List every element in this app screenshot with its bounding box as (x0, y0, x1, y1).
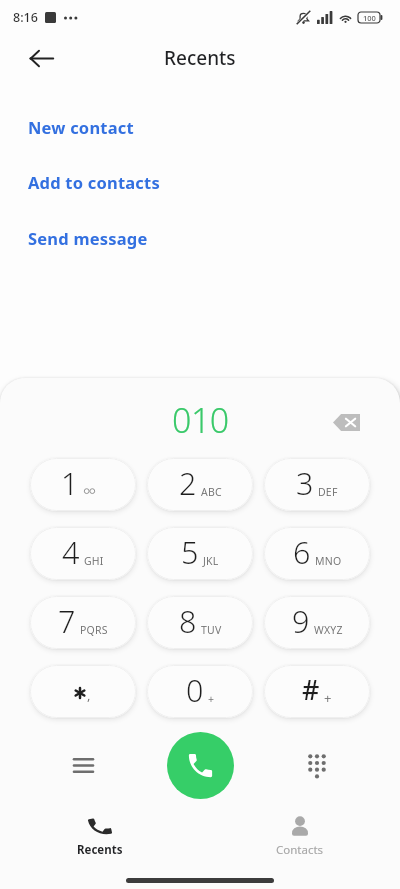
staticText: DEF (318, 485, 338, 499)
button[interactable]: Keypad (295, 743, 339, 787)
button[interactable]: Recents (0, 812, 200, 858)
staticText: Recents (164, 45, 236, 71)
staticText: 8 (179, 600, 197, 642)
button[interactable]: 6 (264, 527, 370, 580)
staticText: 5 (181, 531, 199, 573)
button[interactable]: 5 (147, 527, 253, 580)
staticText: MNO (315, 554, 342, 568)
staticText: WXYZ (314, 623, 343, 637)
button[interactable]: Send message (0, 216, 400, 260)
staticText: Contacts (276, 842, 324, 858)
staticText: 4 (62, 531, 80, 573)
staticText: + (208, 692, 215, 706)
staticText: 6 (293, 531, 311, 573)
staticText: 7 (58, 600, 76, 642)
button[interactable]: Backspace (326, 402, 366, 442)
button[interactable]: 9 (264, 596, 370, 649)
staticText: Recents (77, 842, 123, 858)
button[interactable]: Add to contacts (0, 160, 400, 204)
staticText: New contact (28, 116, 134, 138)
button[interactable]: 4 (30, 527, 136, 580)
button[interactable]: 2 (147, 458, 253, 511)
button[interactable]: # (264, 665, 370, 718)
staticText: Send message (28, 227, 148, 249)
staticText: + (324, 689, 332, 707)
button[interactable]: Menu (61, 743, 105, 787)
button[interactable]: Back (19, 41, 63, 75)
staticText: PQRS (80, 623, 108, 637)
button[interactable]: Call (167, 732, 234, 799)
staticText: 0 (186, 669, 204, 711)
button[interactable]: , (30, 665, 136, 718)
staticText: 3 (296, 462, 314, 504)
staticText: 100 (363, 13, 376, 23)
button[interactable]: 1 (30, 458, 136, 511)
staticText: 010 (172, 397, 229, 443)
staticText: , (87, 686, 91, 704)
staticText: 1 (61, 462, 79, 504)
staticText: 8:16 (13, 9, 38, 26)
staticText: 9 (292, 600, 310, 642)
staticText: 2 (179, 462, 197, 504)
staticText: TUV (201, 623, 222, 637)
button[interactable]: 8 (147, 596, 253, 649)
staticText: GHI (84, 554, 104, 568)
staticText: ABC (201, 485, 222, 499)
staticText: JKL (203, 554, 219, 568)
button[interactable]: New contact (0, 105, 400, 149)
button[interactable]: Contacts (200, 812, 400, 858)
staticText: # (302, 671, 320, 708)
button[interactable]: 7 (30, 596, 136, 649)
button[interactable]: 0 (147, 665, 253, 718)
staticText: Add to contacts (28, 171, 160, 193)
button[interactable]: 3 (264, 458, 370, 511)
